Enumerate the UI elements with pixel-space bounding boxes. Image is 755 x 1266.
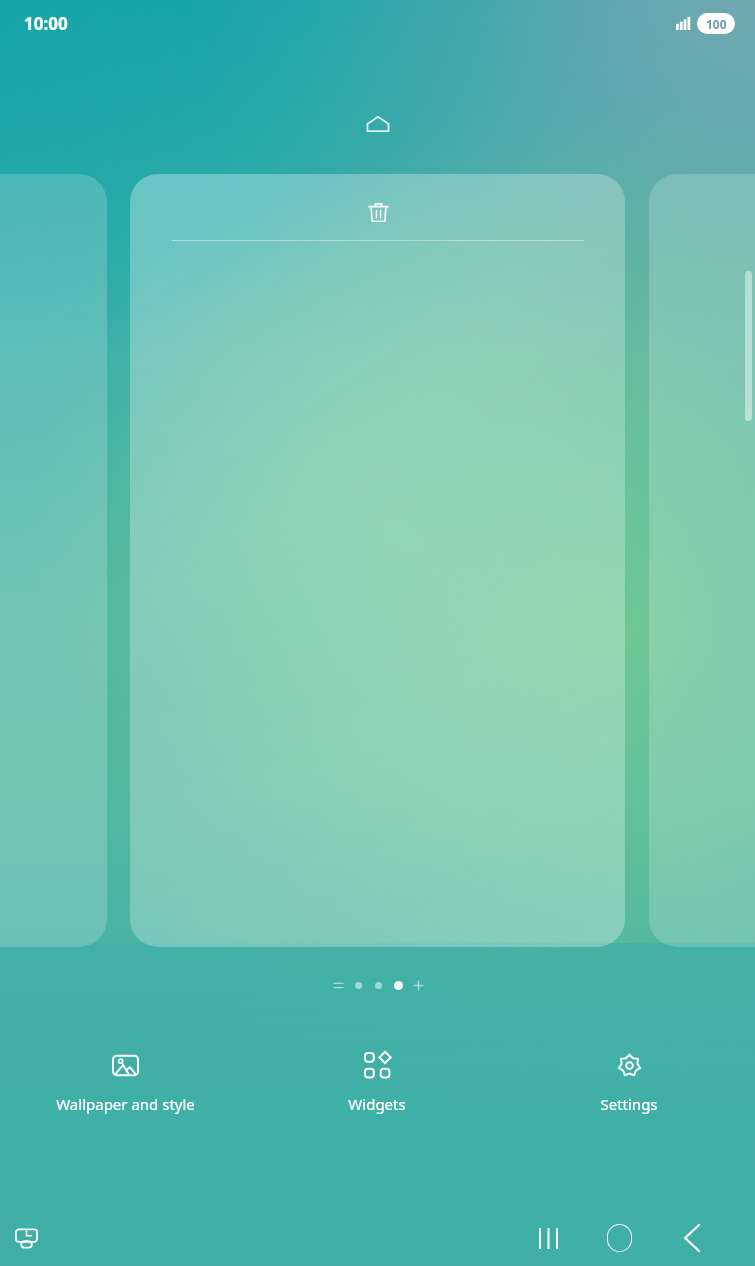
button[interactable]: Home: [583, 1210, 655, 1266]
button[interactable]: Settings: [503, 1040, 755, 1126]
button[interactable]: Apps screen: [328, 975, 348, 995]
button[interactable]: Current home screen page: [130, 174, 625, 947]
button[interactable]: Page 3: [388, 975, 408, 995]
staticText: Settings: [600, 1094, 658, 1114]
button[interactable]: Add page: [408, 975, 428, 995]
button[interactable]: Page 2: [368, 975, 388, 995]
staticText: 10:00: [24, 12, 68, 35]
button[interactable]: Wallpaper and style: [0, 1040, 251, 1126]
staticText: 100: [706, 16, 727, 32]
button[interactable]: Next home screen page: [649, 174, 755, 947]
button[interactable]: Screen timeout: [4, 1216, 48, 1260]
button[interactable]: Remove page: [354, 188, 402, 236]
button[interactable]: Widgets: [251, 1040, 503, 1126]
button[interactable]: Recent apps: [511, 1210, 583, 1266]
button[interactable]: Home screen: [358, 104, 398, 144]
staticText: Widgets: [348, 1094, 406, 1114]
button[interactable]: Back: [655, 1210, 727, 1266]
button[interactable]: Page 1: [348, 975, 368, 995]
button[interactable]: Previous home screen page: [0, 174, 107, 947]
staticText: Wallpaper and style: [56, 1094, 195, 1114]
